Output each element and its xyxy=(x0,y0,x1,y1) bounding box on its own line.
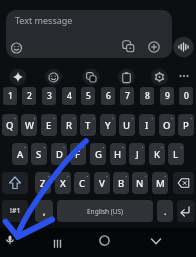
staticText: W xyxy=(25,119,34,132)
button[interactable]: Q xyxy=(2,114,18,136)
staticText: P xyxy=(183,119,189,132)
staticText: E xyxy=(46,119,52,132)
button[interactable]: English (US) xyxy=(57,200,153,222)
button[interactable]: 2 xyxy=(22,87,36,105)
button[interactable]: 6 xyxy=(101,87,115,105)
staticText: J xyxy=(136,148,139,161)
button[interactable]: C xyxy=(74,172,90,194)
staticText: Z xyxy=(40,177,46,190)
button[interactable]: F xyxy=(70,143,86,165)
staticText: 1 xyxy=(8,90,13,102)
button[interactable]: A xyxy=(12,143,28,165)
staticText: 3 xyxy=(47,90,52,102)
button[interactable]: R xyxy=(61,114,77,136)
button[interactable]: U xyxy=(119,114,135,136)
button[interactable]: , xyxy=(35,200,53,222)
staticText: , xyxy=(43,205,46,217)
button[interactable]: 8 xyxy=(140,87,154,105)
staticText: H xyxy=(114,148,122,161)
button[interactable]: 5 xyxy=(81,87,95,105)
staticText: S xyxy=(36,148,42,161)
staticText: 8 xyxy=(145,90,150,102)
button[interactable]: 7 xyxy=(120,87,134,105)
staticText: Text message xyxy=(15,14,73,26)
button[interactable]: W xyxy=(21,114,37,136)
staticText: A xyxy=(17,148,24,161)
button[interactable]: Z xyxy=(35,172,51,194)
button[interactable]: H xyxy=(110,143,126,165)
staticText: V xyxy=(99,177,105,190)
staticText: 9 xyxy=(165,90,170,102)
staticText: M xyxy=(156,177,165,190)
staticText: !#1 xyxy=(10,206,21,216)
button[interactable]: P xyxy=(178,114,194,136)
staticText: F xyxy=(75,148,81,161)
button[interactable]: !#1 xyxy=(2,200,28,222)
button[interactable]: V xyxy=(94,172,110,194)
button[interactable]: J xyxy=(129,143,145,165)
button[interactable]: 3 xyxy=(42,87,56,105)
button[interactable] xyxy=(2,232,20,250)
button[interactable] xyxy=(173,172,194,194)
staticText: U xyxy=(123,119,131,132)
staticText: I xyxy=(145,119,149,132)
button[interactable]: D xyxy=(51,143,67,165)
button[interactable]: 9 xyxy=(160,87,174,105)
staticText: English (US) xyxy=(87,207,124,216)
button[interactable] xyxy=(6,10,172,58)
button[interactable]: T xyxy=(80,114,96,136)
staticText: L xyxy=(173,148,179,161)
button[interactable] xyxy=(177,200,195,222)
staticText: 2 xyxy=(27,90,32,102)
staticText: C xyxy=(79,177,86,190)
staticText: R xyxy=(66,119,73,132)
staticText: K xyxy=(154,148,161,161)
button[interactable]: I xyxy=(139,114,155,136)
staticText: 6 xyxy=(106,90,111,102)
button[interactable]: K xyxy=(149,143,165,165)
button[interactable] xyxy=(94,231,114,251)
button[interactable] xyxy=(2,172,28,194)
staticText: 0 xyxy=(184,90,189,102)
staticText: D xyxy=(56,148,63,161)
button[interactable]: E xyxy=(41,114,57,136)
button[interactable]: B xyxy=(113,172,129,194)
button[interactable]: X xyxy=(55,172,71,194)
button[interactable]: O xyxy=(159,114,175,136)
button[interactable] xyxy=(47,234,67,254)
button[interactable]: Y xyxy=(100,114,116,136)
staticText: Y xyxy=(105,119,111,132)
staticText: O xyxy=(163,119,171,132)
staticText: X xyxy=(60,177,66,190)
button[interactable]: M xyxy=(152,172,168,194)
staticText: 5 xyxy=(86,90,91,102)
staticText: G xyxy=(95,148,102,161)
button[interactable]: G xyxy=(90,143,106,165)
button[interactable]: L xyxy=(168,143,184,165)
staticText: N xyxy=(136,177,144,190)
button[interactable]: S xyxy=(31,143,47,165)
button[interactable]: N xyxy=(132,172,148,194)
staticText: Q xyxy=(6,119,14,132)
button[interactable]: 1 xyxy=(3,87,17,105)
button[interactable]: 0 xyxy=(179,87,193,105)
staticText: B xyxy=(118,177,125,190)
button[interactable]: . xyxy=(157,200,173,222)
button[interactable] xyxy=(146,232,166,252)
button[interactable]: 4 xyxy=(62,87,76,105)
staticText: 7 xyxy=(125,90,130,102)
staticText: . xyxy=(164,205,167,217)
staticText: 4 xyxy=(67,90,72,102)
staticText: T xyxy=(85,119,91,132)
